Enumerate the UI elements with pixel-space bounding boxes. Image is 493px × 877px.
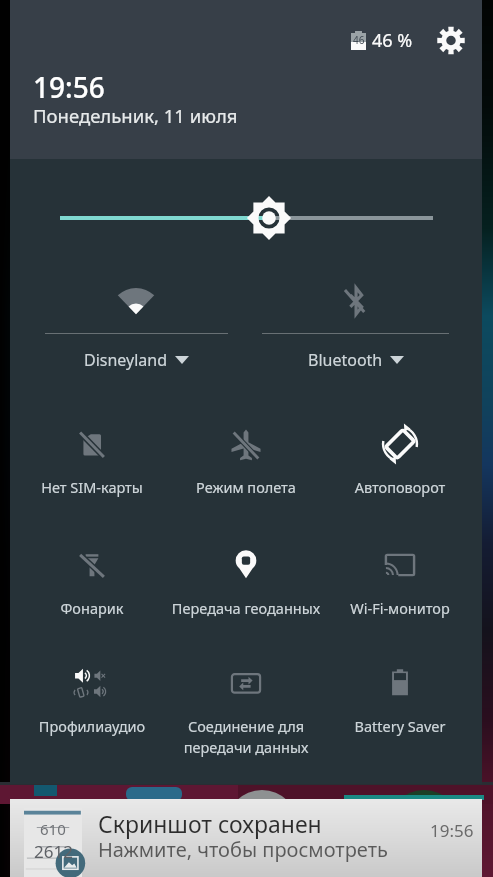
- button[interactable]: Фонарик: [7, 535, 177, 635]
- button[interactable]: Settings: [427, 17, 474, 64]
- staticText: 46: [353, 33, 365, 47]
- staticText: Нет SIM-карты: [7, 477, 177, 497]
- staticText: Нажмите, чтобы просмотреть: [98, 836, 388, 863]
- button[interactable]: Disneyland: [45, 275, 228, 375]
- button[interactable]: Соединение для передачи данных: [161, 653, 331, 753]
- staticText: Bluetooth: [308, 349, 383, 371]
- button[interactable]: 610: [10, 799, 482, 877]
- staticText: Понедельник, 11 июля: [33, 103, 238, 128]
- staticText: Disneyland: [84, 349, 168, 371]
- button[interactable]: Battery Saver: [315, 653, 485, 753]
- button[interactable]: Автоповорот: [315, 414, 485, 514]
- button[interactable]: Передача геоданных: [161, 535, 331, 635]
- button[interactable]: Brightness: [40, 196, 460, 242]
- staticText: Режим полета: [161, 477, 331, 497]
- staticText: 19:56: [430, 819, 474, 842]
- staticText: Профилиаудио: [7, 716, 177, 736]
- staticText: 610: [40, 819, 66, 839]
- staticText: Wi-Fi-монитор: [315, 598, 485, 618]
- staticText: Фонарик: [7, 598, 177, 618]
- button[interactable]: Профилиаудио: [7, 653, 177, 753]
- staticText: 19:56: [33, 68, 105, 106]
- staticText: Автоповорот: [315, 477, 485, 497]
- staticText: Соединение для передачи данных: [161, 716, 331, 758]
- button[interactable]: Bluetooth: [262, 275, 449, 375]
- staticText: 46 %: [372, 28, 413, 53]
- staticText: Скриншот сохранен: [98, 808, 322, 839]
- button[interactable]: Wi-Fi-монитор: [315, 535, 485, 635]
- staticText: Передача геоданных: [161, 598, 331, 618]
- button[interactable]: Режим полета: [161, 414, 331, 514]
- staticText: 2612: [34, 840, 73, 863]
- staticText: Battery Saver: [315, 716, 485, 736]
- button[interactable]: Нет SIM-карты: [7, 414, 177, 514]
